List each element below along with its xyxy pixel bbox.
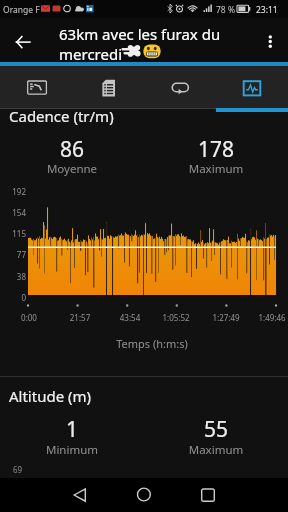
staticText: Minimum — [0, 442, 144, 458]
button[interactable]: More options — [252, 18, 288, 62]
button[interactable]: Recent apps — [190, 478, 226, 512]
staticText: 38 — [0, 271, 26, 282]
staticText: Maximum — [144, 442, 288, 458]
staticText: 63km avec les furax du — [59, 24, 221, 44]
staticText: 115 — [0, 228, 26, 239]
staticText: 178 — [144, 135, 288, 164]
button[interactable]: Details — [72, 66, 144, 108]
staticText: 55 — [144, 415, 288, 444]
staticText: 1:27:49 — [202, 312, 250, 323]
staticText: Cadence (tr/m) — [9, 106, 114, 126]
staticText: Moyenne — [0, 161, 144, 177]
staticText: 21:57 — [56, 312, 104, 323]
button[interactable]: Home — [126, 478, 162, 512]
staticText: 86 — [0, 135, 144, 164]
staticText: 0:00 — [5, 312, 53, 323]
staticText: 78 % — [216, 4, 235, 16]
button[interactable]: Back — [62, 478, 98, 512]
button[interactable]: Map — [0, 66, 72, 108]
button[interactable]: Laps — [144, 66, 216, 108]
staticText: 154 — [0, 207, 26, 218]
staticText: Maximum — [144, 161, 288, 177]
staticText: 1:49:46 — [248, 312, 288, 323]
staticText: 69 — [13, 464, 23, 475]
staticText: Orange F — [3, 4, 40, 16]
staticText: 1:05:52 — [152, 312, 200, 323]
staticText: 43:54 — [106, 312, 154, 323]
staticText: Temps (h:m:s) — [28, 336, 276, 351]
staticText: 0 — [0, 292, 26, 303]
staticText: 192 — [0, 186, 26, 197]
staticText: mercredi — [59, 44, 123, 64]
button[interactable]: Charts — [216, 66, 288, 108]
staticText: 1 — [0, 415, 144, 444]
staticText: Altitude (m) — [9, 386, 92, 406]
staticText: 23:11 — [256, 4, 278, 16]
staticText: 77 — [0, 249, 26, 260]
button[interactable]: Navigate up — [1, 18, 45, 62]
